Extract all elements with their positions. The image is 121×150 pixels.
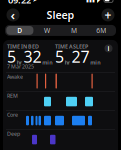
staticText: 32 xyxy=(23,46,41,67)
staticText: M xyxy=(71,26,77,35)
staticText: + xyxy=(104,7,111,23)
staticText: ➤ xyxy=(32,0,36,3)
staticText: i xyxy=(107,44,109,53)
staticText: ▮▮▮ xyxy=(86,0,95,3)
button[interactable]: W xyxy=(33,26,60,35)
staticText: min xyxy=(90,59,100,66)
staticText: min xyxy=(42,59,52,66)
button[interactable]: Back xyxy=(4,7,22,23)
staticText: TIME ASLEEP xyxy=(55,43,88,50)
staticText: Deep xyxy=(7,130,20,137)
staticText: D xyxy=(17,26,22,35)
staticText: 7 Mar 2025 xyxy=(7,63,34,70)
staticText: hr xyxy=(17,59,22,66)
staticText: 09:22 xyxy=(8,0,31,6)
staticText: 6M xyxy=(96,26,106,35)
staticText: Awake xyxy=(7,73,23,80)
button[interactable]: M xyxy=(60,26,88,35)
staticText: ‹ xyxy=(10,6,15,24)
button[interactable]: About sleep stages xyxy=(103,43,114,54)
staticText: 5 xyxy=(55,46,64,67)
button[interactable]: D xyxy=(6,26,33,35)
button[interactable]: 6M xyxy=(88,26,115,35)
staticText: W xyxy=(44,26,50,35)
staticText: REM xyxy=(7,92,18,99)
staticText: Sleep xyxy=(46,8,74,22)
staticText: hr xyxy=(65,59,70,66)
staticText: ◤ xyxy=(97,0,102,4)
button[interactable]: Add Data xyxy=(99,7,117,23)
staticText: 5 xyxy=(7,46,16,67)
staticText: TIME IN BED xyxy=(7,43,39,50)
staticText: Core xyxy=(7,111,18,118)
staticText: 27 xyxy=(71,46,89,67)
